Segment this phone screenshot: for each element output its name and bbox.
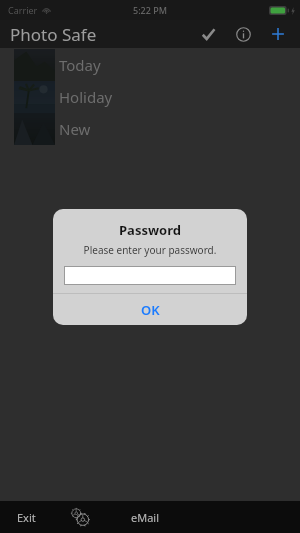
staticText: 5:22 PM: [133, 4, 167, 16]
staticText: Exit: [17, 510, 36, 525]
button[interactable]: Today: [0, 49, 300, 81]
button[interactable]: eMail: [108, 501, 182, 533]
button[interactable]: Settings: [52, 501, 108, 533]
staticText: eMail: [131, 510, 160, 525]
staticText: Holiday: [59, 87, 113, 107]
button[interactable]: New: [0, 113, 300, 145]
staticText: Today: [59, 55, 101, 75]
button[interactable]: Info: [229, 20, 257, 48]
button[interactable]: Exit: [0, 501, 52, 533]
button[interactable]: Holiday: [0, 81, 300, 113]
staticText: Photo Safe: [10, 23, 97, 46]
staticText: Please enter your password.: [53, 243, 247, 257]
button[interactable]: Add: [264, 20, 292, 48]
staticText: New: [59, 119, 91, 139]
staticText: Password: [53, 221, 247, 239]
button[interactable]: Select: [194, 20, 222, 48]
staticText: OK: [141, 301, 160, 319]
button[interactable]: OK: [53, 294, 247, 325]
staticText: Carrier: [8, 4, 38, 16]
